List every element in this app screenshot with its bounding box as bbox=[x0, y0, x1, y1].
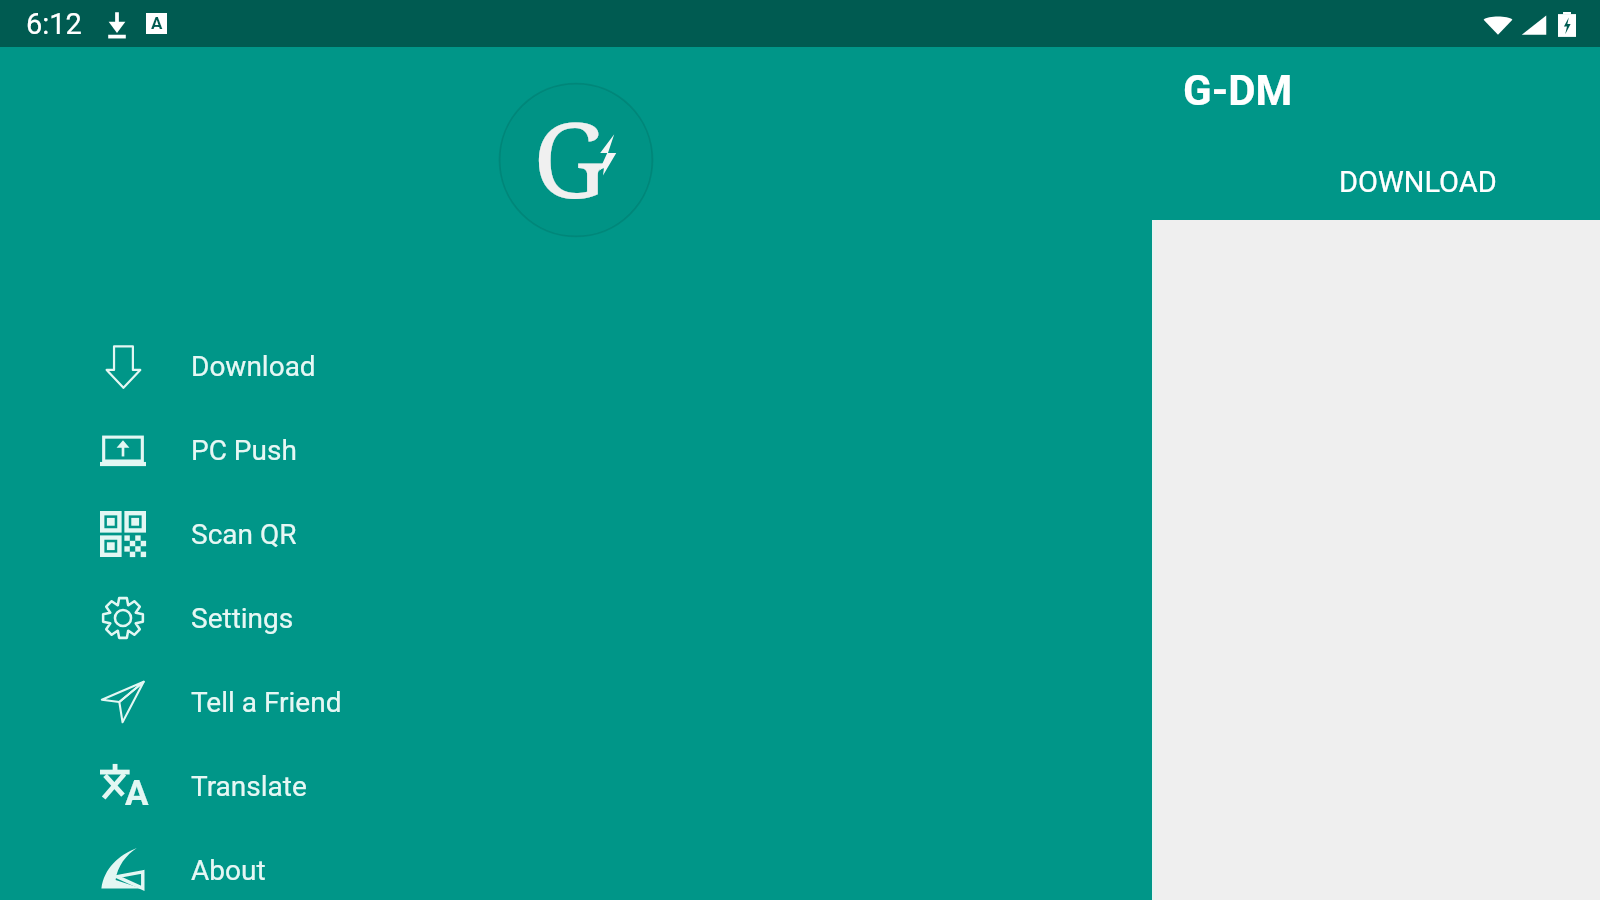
button[interactable]: Tell a Friend bbox=[0, 660, 1152, 744]
staticText: DOWNLOAD bbox=[1339, 165, 1497, 199]
staticText: G bbox=[533, 87, 608, 229]
staticText: About bbox=[191, 854, 266, 887]
staticText: Settings bbox=[191, 602, 294, 635]
button[interactable]: A bbox=[0, 744, 1152, 828]
staticText: PC Push bbox=[191, 434, 297, 467]
staticText: Download bbox=[191, 350, 316, 383]
button[interactable]: Scan QR bbox=[0, 492, 1152, 576]
button[interactable]: PC Push bbox=[0, 408, 1152, 492]
button[interactable]: About bbox=[0, 828, 1152, 900]
staticText: A bbox=[151, 13, 163, 33]
button[interactable]: G-DM bbox=[1183, 61, 1303, 117]
button[interactable]: G-DM app logo bbox=[498, 82, 654, 238]
button[interactable]: DOWNLOAD bbox=[1292, 143, 1544, 220]
button[interactable]: Settings bbox=[0, 576, 1152, 660]
staticText: A bbox=[125, 773, 149, 814]
staticText: Translate bbox=[191, 770, 307, 803]
button[interactable]: Download bbox=[0, 324, 1152, 408]
staticText: Tell a Friend bbox=[191, 686, 342, 719]
staticText: G-DM bbox=[1183, 66, 1293, 115]
staticText: 6:12 bbox=[26, 7, 82, 41]
staticText: Scan QR bbox=[191, 518, 297, 551]
